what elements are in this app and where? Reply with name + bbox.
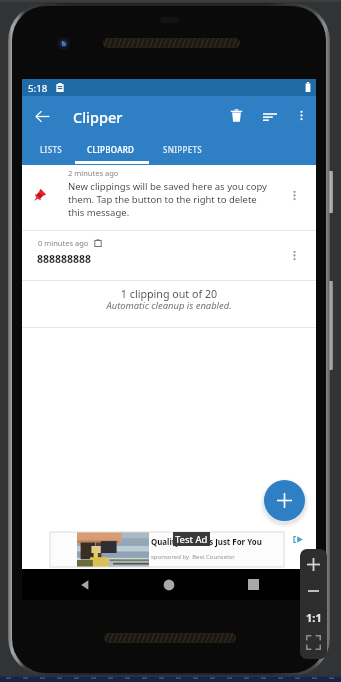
staticText: New clippings will be saved here as you … xyxy=(68,180,267,219)
button[interactable]: Add clipping xyxy=(264,480,305,521)
button[interactable]: Zoom in xyxy=(300,552,327,577)
staticText: CLIPBOARD xyxy=(87,144,135,155)
staticText: SNIPPETS xyxy=(163,144,202,155)
button[interactable]: SNIPPETS xyxy=(150,137,214,165)
button[interactable]: Quality Ladders Just For You xyxy=(50,532,284,567)
staticText: 5:18 xyxy=(28,82,48,95)
staticText: Quality Ladders Just For You xyxy=(151,537,262,548)
staticText: 1:1 xyxy=(306,610,322,625)
staticText: Automatic cleanup is enabled. xyxy=(22,299,316,312)
button[interactable]: Actual size xyxy=(300,604,327,630)
button[interactable]: Item options xyxy=(281,242,307,268)
button[interactable]: Back xyxy=(26,100,59,133)
button[interactable]: 0 minutes ago xyxy=(22,231,316,280)
button[interactable]: LISTS xyxy=(22,137,80,165)
staticText: Clipper xyxy=(73,107,123,127)
button[interactable]: Sort xyxy=(255,102,284,131)
button[interactable]: Delete all xyxy=(222,101,251,130)
button[interactable]: CLIPBOARD xyxy=(80,137,142,165)
staticText: 1 clipping out of 20 xyxy=(22,287,316,302)
button[interactable]: Zoom out xyxy=(300,578,327,603)
button[interactable]: Fit to screen xyxy=(300,630,327,655)
button[interactable]: 2 minutes ago xyxy=(22,165,316,230)
button[interactable]: Recent apps xyxy=(235,569,271,600)
button[interactable]: Back xyxy=(67,569,103,600)
staticText: 2 minutes ago xyxy=(68,168,119,178)
staticText: LISTS xyxy=(40,144,62,155)
staticText: 0 minutes ago xyxy=(38,238,89,248)
staticText: 888888888 xyxy=(37,252,92,266)
staticText: Test Ad xyxy=(175,533,208,546)
button[interactable]: Home xyxy=(151,569,187,600)
staticText: sponsored by Best Counselor xyxy=(151,553,235,561)
button[interactable]: Item options xyxy=(281,182,307,208)
button[interactable]: More options xyxy=(287,101,315,129)
